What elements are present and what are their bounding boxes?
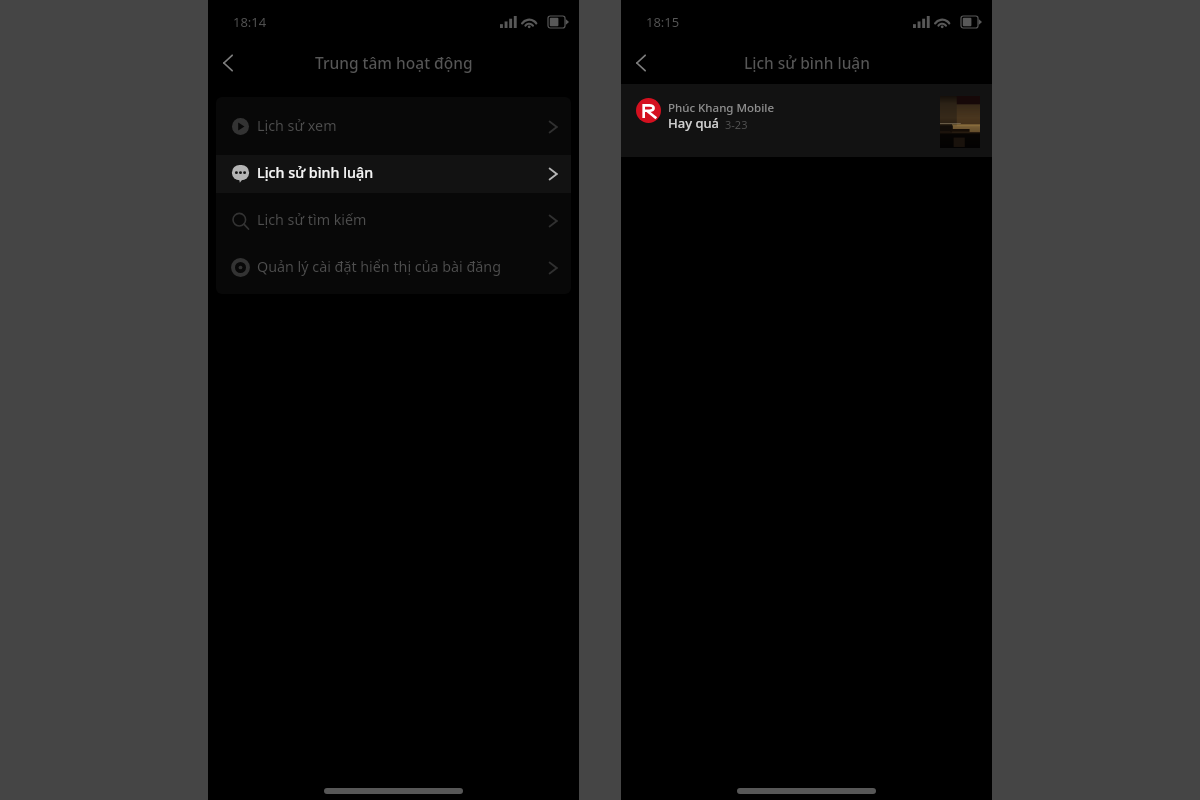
- staticText: Phúc Khang Mobile: [668, 100, 774, 116]
- staticText: 18:14: [233, 13, 267, 31]
- button[interactable]: Phúc Khang Mobile: [621, 84, 992, 157]
- button[interactable]: Lịch sử bình luận: [216, 150, 571, 197]
- staticText: Lịch sử bình luận: [744, 52, 870, 73]
- button[interactable]: Back: [622, 44, 660, 81]
- button[interactable]: Back: [209, 44, 247, 81]
- staticText: Hay quá: [668, 114, 720, 132]
- staticText: Lịch sử tìm kiếm: [257, 210, 367, 229]
- button[interactable]: Quản lý cài đặt hiển thị của bài đăng: [216, 244, 571, 291]
- button[interactable]: Lịch sử xem: [216, 103, 571, 150]
- staticText: Trung tâm hoạt động: [315, 52, 473, 73]
- staticText: Lịch sử bình luận: [257, 163, 374, 182]
- staticText: Lịch sử xem: [257, 116, 337, 135]
- staticText: Quản lý cài đặt hiển thị của bài đăng: [257, 257, 501, 276]
- staticText: 18:15: [646, 13, 680, 31]
- staticText: 3-23: [725, 117, 748, 132]
- button[interactable]: Lịch sử tìm kiếm: [216, 197, 571, 244]
